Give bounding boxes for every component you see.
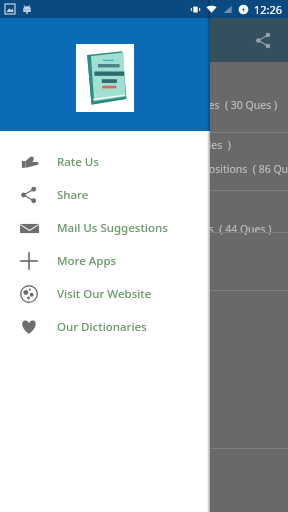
staticText: 12:26 <box>254 2 283 17</box>
staticText: Share <box>57 187 89 203</box>
button[interactable]: Mail Us Suggestions <box>0 211 210 244</box>
staticText: Visit Our Website <box>57 286 152 302</box>
button[interactable]: Rate Us <box>0 145 210 178</box>
button[interactable]: Share <box>246 23 280 57</box>
staticText: Mail Us Suggestions <box>57 220 168 236</box>
button[interactable]: Visit Our Website <box>0 277 210 310</box>
button[interactable]: Our Dictionaries <box>0 310 210 343</box>
staticText: Articles ) <box>186 138 231 152</box>
button[interactable]: More Apps <box>0 244 210 277</box>
staticText: Verbs ( 44 Ques ) <box>186 222 272 236</box>
staticText: Our Dictionaries <box>57 319 147 335</box>
staticText: Prepositions ( 86 Ques ) <box>186 162 288 176</box>
button[interactable]: Share <box>0 178 210 211</box>
staticText: More Apps <box>57 253 117 269</box>
staticText: Rate Us <box>57 154 99 170</box>
staticText: Tenses ( 30 Ques ) <box>186 98 278 112</box>
